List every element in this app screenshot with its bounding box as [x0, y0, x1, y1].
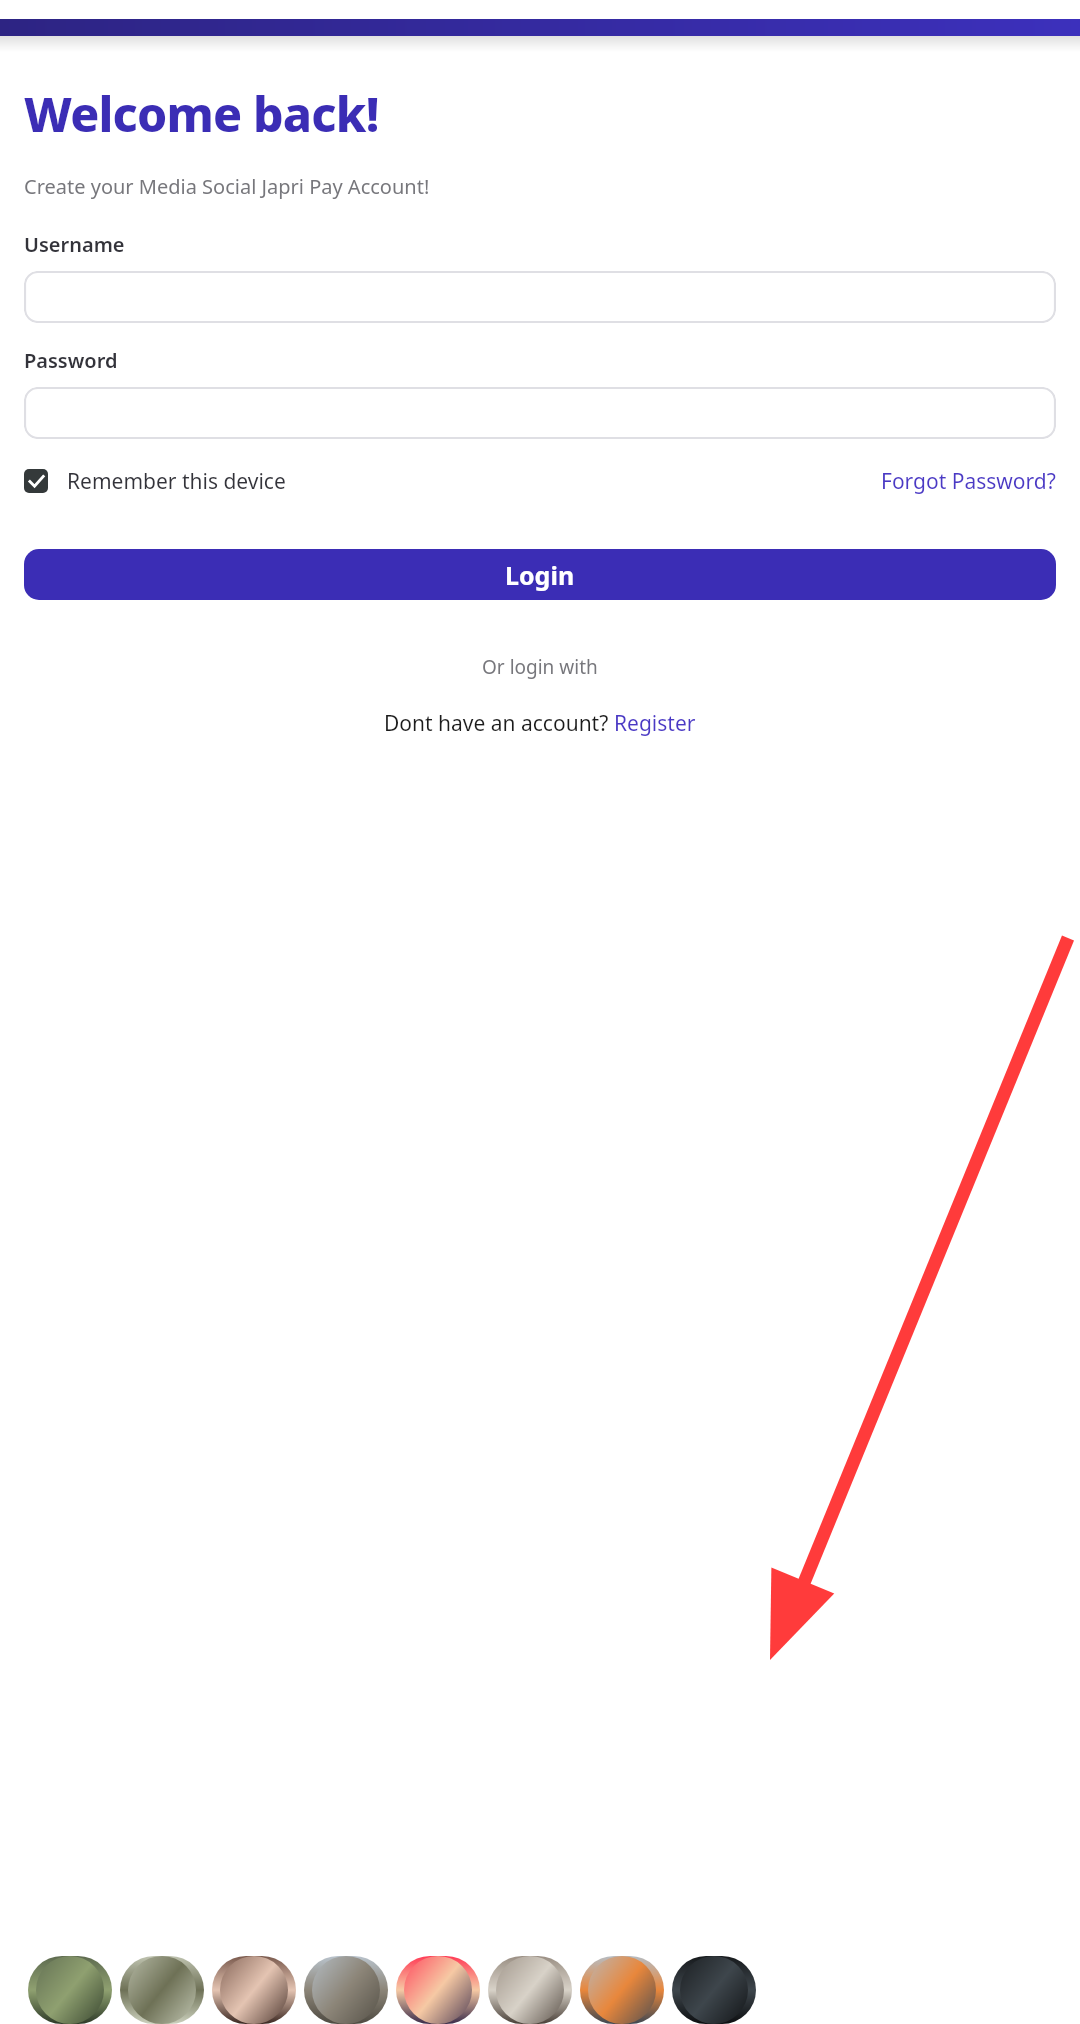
staticText: Dont have an account? — [384, 709, 614, 738]
staticText: Forgot Password? — [881, 467, 1056, 496]
staticText: Login — [505, 558, 575, 592]
button[interactable]: User avatar — [396, 1956, 480, 2024]
staticText: Welcome back! — [24, 81, 379, 146]
button[interactable]: Remember this device — [67, 467, 286, 496]
staticText: Or login with — [482, 654, 598, 680]
button[interactable]: User avatar — [212, 1956, 296, 2024]
button[interactable]: User avatar — [28, 1956, 112, 2024]
button[interactable]: User avatar — [488, 1956, 572, 2024]
button[interactable]: User avatar — [672, 1956, 756, 2024]
staticText: Remember this device — [67, 467, 286, 496]
button[interactable]: User avatar — [120, 1956, 204, 2024]
staticText: Create your Media Social Japri Pay Accou… — [24, 173, 430, 200]
button[interactable]: Text input field — [24, 387, 1056, 439]
button[interactable]: Text input field — [24, 271, 1056, 323]
button[interactable]: Remember this device checkbox — [24, 469, 48, 493]
staticText: Username — [24, 231, 125, 258]
button[interactable]: Register — [614, 709, 696, 738]
button[interactable]: User avatar — [304, 1956, 388, 2024]
button[interactable]: Forgot Password? — [881, 467, 1056, 496]
staticText: Register — [614, 709, 696, 738]
staticText: Password — [24, 347, 118, 374]
button[interactable]: Login — [24, 549, 1056, 600]
button[interactable]: User avatar — [580, 1956, 664, 2024]
